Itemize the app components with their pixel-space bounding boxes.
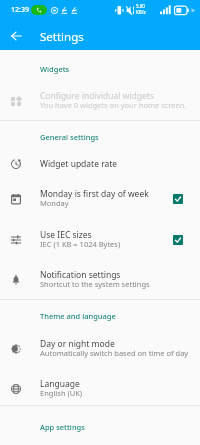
staticText: Monday bbox=[40, 198, 69, 208]
button[interactable]: Back bbox=[5, 25, 28, 47]
button[interactable]: Language bbox=[0, 375, 200, 403]
staticText: Settings bbox=[40, 29, 84, 45]
staticText: You have 0 widgets on your home screen. bbox=[40, 100, 187, 110]
staticText: 5.00 bbox=[136, 3, 145, 9]
button[interactable]: Monday is first day of week bbox=[0, 185, 200, 213]
button[interactable]: Configure individual widgets bbox=[0, 87, 200, 115]
button[interactable]: Day or night mode bbox=[0, 335, 200, 363]
staticText: Theme and language bbox=[40, 311, 116, 321]
button[interactable]: Use IEC sizes bbox=[0, 226, 200, 254]
staticText: Monday is first day of week bbox=[40, 188, 149, 200]
staticText: General settings bbox=[40, 132, 99, 142]
staticText: Widget update rate bbox=[40, 158, 118, 170]
staticText: Configure individual widgets bbox=[40, 90, 155, 102]
staticText: IEC (1 KB = 1024 Bytes) bbox=[40, 239, 121, 249]
staticText: Day or night mode bbox=[40, 338, 115, 350]
staticText: Language bbox=[40, 378, 80, 390]
staticText: App settings bbox=[40, 422, 85, 432]
staticText: Notification settings bbox=[40, 269, 121, 281]
button[interactable]: Notification settings bbox=[0, 266, 200, 294]
staticText: 12:39 bbox=[11, 5, 29, 15]
staticText: Shortcut to the system settings bbox=[40, 279, 150, 289]
staticText: English (UK) bbox=[40, 388, 83, 398]
staticText: Widgets bbox=[40, 64, 70, 74]
staticText: Automatically switch based on time of da… bbox=[40, 348, 189, 358]
button[interactable]: Widget update rate bbox=[0, 154, 200, 174]
staticText: Use IEC sizes bbox=[40, 229, 92, 241]
staticText: KB/s bbox=[136, 9, 146, 15]
